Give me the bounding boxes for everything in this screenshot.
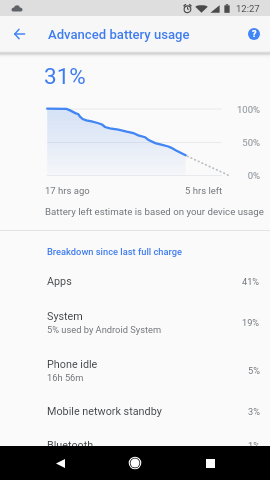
staticText: 12:27: [236, 3, 260, 14]
staticText: 1%: [248, 440, 260, 451]
staticText: Breakdown since last full charge: [47, 246, 182, 257]
button[interactable]: Phone idle: [0, 346, 270, 394]
button[interactable]: Back: [1, 16, 37, 52]
button[interactable]: Home: [118, 446, 152, 480]
staticText: 16h 56m: [47, 372, 84, 383]
button[interactable]: System: [0, 298, 270, 346]
staticText: ?: [252, 29, 257, 40]
staticText: 41%: [242, 276, 260, 287]
staticText: 5 hrs left: [185, 185, 223, 196]
staticText: 3%: [248, 406, 260, 417]
button[interactable]: Apps: [0, 264, 270, 298]
staticText: 50%: [220, 137, 260, 148]
staticText: Mobile network standby: [47, 405, 162, 418]
staticText: 19%: [242, 317, 260, 328]
staticText: 0%: [220, 170, 260, 181]
staticText: 100%: [220, 104, 260, 115]
staticText: Advanced battery usage: [48, 27, 190, 42]
staticText: System: [47, 310, 83, 323]
staticText: 5% used by Android System: [47, 324, 162, 335]
button[interactable]: Breakdown since last full charge: [0, 236, 270, 264]
staticText: Bluetooth: [47, 439, 94, 452]
button[interactable]: Help: [236, 16, 270, 52]
staticText: 31%: [44, 63, 86, 89]
button[interactable]: Bluetooth: [0, 428, 270, 462]
staticText: Phone idle: [47, 358, 98, 371]
staticText: Apps: [47, 275, 72, 288]
button[interactable]: Mobile network standby: [0, 394, 270, 428]
button[interactable]: Recents: [193, 446, 227, 480]
staticText: 5%: [248, 365, 260, 376]
button[interactable]: Back: [43, 446, 77, 480]
staticText: 17 hrs ago: [45, 185, 90, 196]
staticText: Battery left estimate is based on your d…: [45, 206, 264, 217]
